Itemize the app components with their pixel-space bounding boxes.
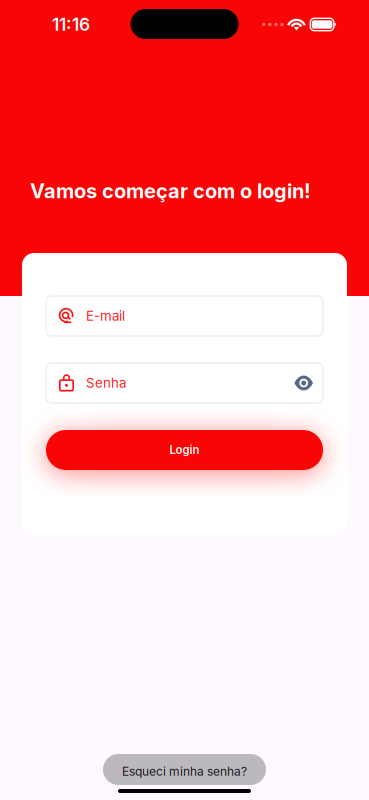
staticText: Vamos começar com o login! — [30, 179, 311, 203]
button[interactable]: E-mail — [46, 296, 323, 336]
staticText: Login — [169, 443, 199, 457]
staticText: E-mail — [86, 308, 125, 324]
staticText: Senha — [86, 375, 126, 391]
button[interactable]: Esqueci minha senha? — [103, 754, 266, 785]
staticText: 11:16 — [52, 14, 90, 35]
button[interactable]: Senha — [46, 363, 323, 403]
button[interactable]: Login — [46, 430, 323, 470]
staticText: Esqueci minha senha? — [122, 764, 247, 779]
